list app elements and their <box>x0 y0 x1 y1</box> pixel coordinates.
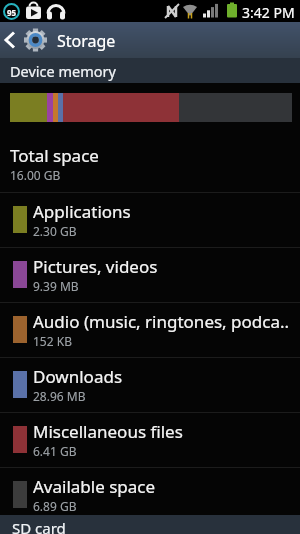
staticText: Applications <box>33 200 131 223</box>
button[interactable]: Miscellaneous files <box>0 412 300 467</box>
staticText: 6.89 GB <box>33 498 77 514</box>
staticText: Audio (music, ringtones, podca.. <box>33 310 290 333</box>
staticText: Pictures, videos <box>33 255 158 278</box>
button[interactable]: Downloads <box>0 357 300 412</box>
staticText: 6.41 GB <box>33 443 77 459</box>
staticText: 3:42 PM <box>242 3 295 22</box>
staticText: 16.00 GB <box>10 167 61 183</box>
staticText: 152 KB <box>33 333 72 349</box>
button[interactable]: Available space <box>0 467 300 522</box>
button[interactable]: Pictures, videos <box>0 247 300 302</box>
staticText: 9.39 MB <box>33 278 79 294</box>
staticText: 28.96 MB <box>33 388 86 404</box>
staticText: Storage <box>57 30 116 52</box>
staticText: Downloads <box>33 365 123 388</box>
staticText: Total space <box>10 144 99 167</box>
staticText: Available space <box>33 475 156 498</box>
staticText: 2.30 GB <box>33 223 77 239</box>
button[interactable] <box>10 93 292 122</box>
staticText: SD card <box>12 518 66 534</box>
staticText: 95 <box>7 7 17 18</box>
staticText: Miscellaneous files <box>33 420 183 443</box>
button[interactable]: Applications <box>0 192 300 247</box>
button[interactable]: Total space <box>0 130 300 192</box>
button[interactable]: Audio (music, ringtones, podca.. <box>0 302 300 357</box>
staticText: Device memory <box>10 61 116 81</box>
button[interactable] <box>0 22 55 58</box>
